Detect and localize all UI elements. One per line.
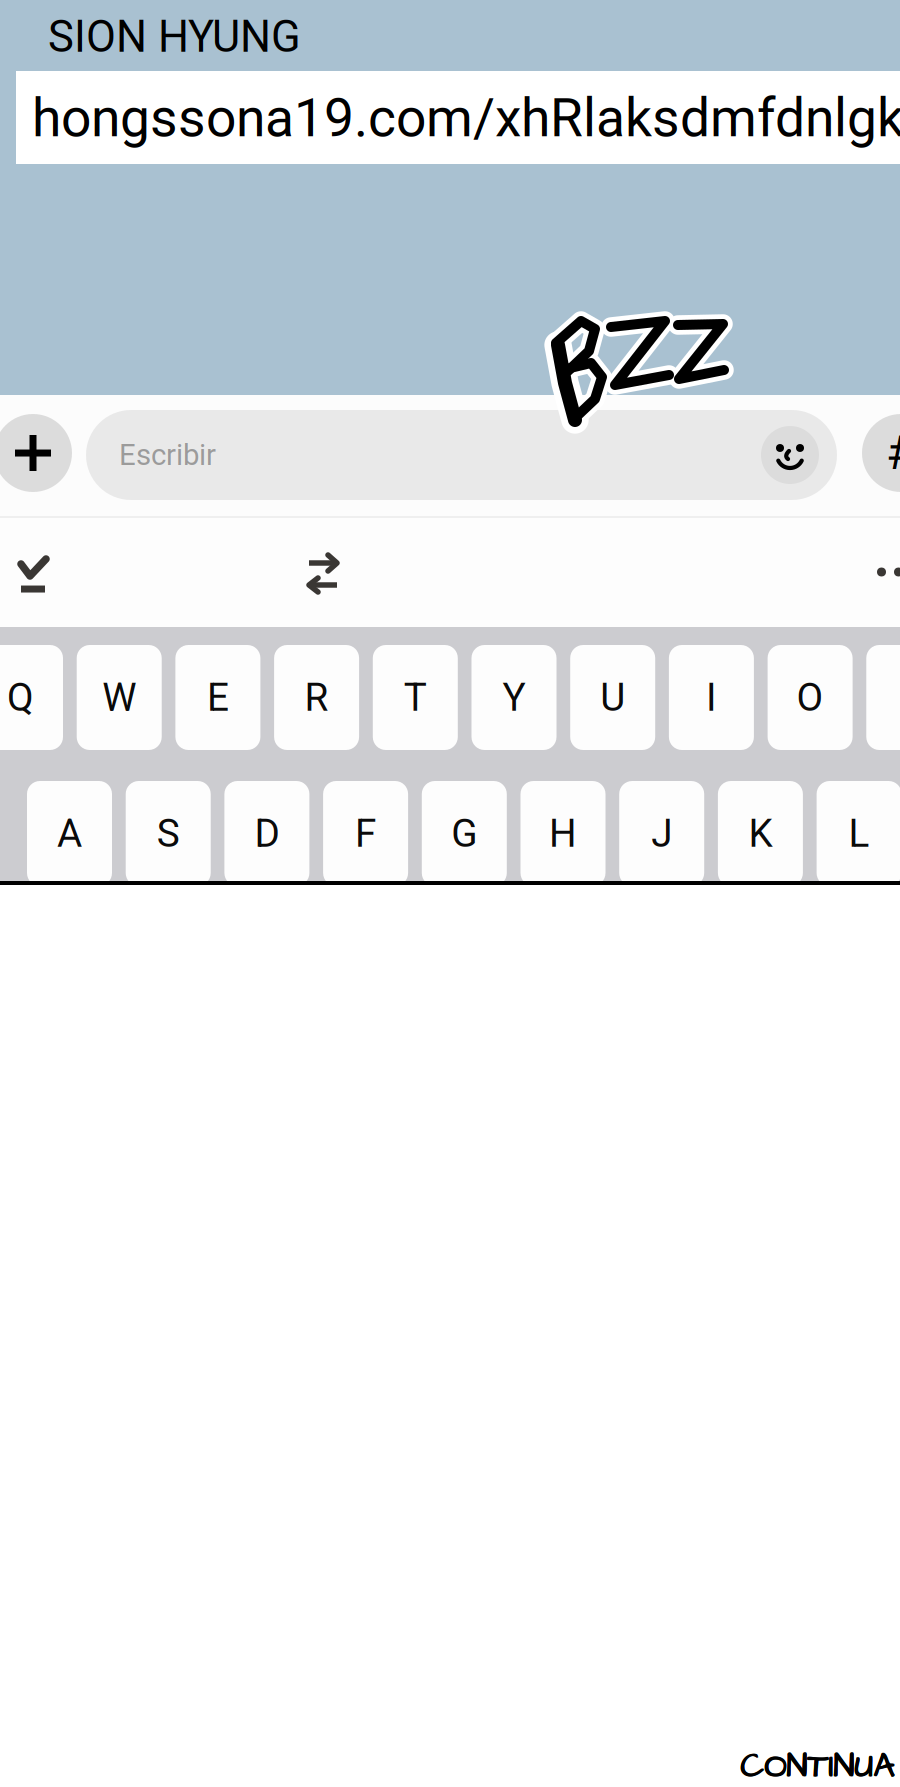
button[interactable]: J [619, 781, 704, 886]
button[interactable]: Hashtag [862, 414, 900, 492]
staticText: L [849, 811, 870, 856]
staticText: SION HYUNG [48, 11, 301, 62]
button[interactable]: A [27, 781, 112, 886]
button[interactable]: W [77, 645, 162, 750]
button[interactable]: K [718, 781, 803, 886]
staticText: J [651, 811, 672, 856]
staticText: G [451, 811, 477, 856]
staticText: Q [7, 675, 34, 720]
staticText: E [207, 675, 229, 720]
staticText: S [157, 811, 180, 856]
staticText: CONTINUA [740, 1744, 894, 1787]
staticText: CONTINUA [741, 1744, 895, 1787]
button[interactable]: Y [471, 645, 556, 750]
staticText: F [355, 811, 376, 856]
staticText: hongssona19.com/xhRlaksdmfdnlgks [32, 87, 900, 149]
staticText: W [102, 675, 136, 720]
staticText: CONTINUA [740, 1743, 894, 1787]
button[interactable]: O [768, 645, 853, 750]
button[interactable]: More [877, 552, 900, 592]
button[interactable]: F [323, 781, 408, 886]
button[interactable]: D [224, 781, 309, 886]
staticText: Escribir [119, 438, 216, 472]
button[interactable]: Hide keyboard [17, 556, 50, 594]
button[interactable]: T [373, 645, 458, 750]
staticText: I [706, 675, 717, 720]
staticText: K [748, 811, 772, 856]
staticText: Y [502, 675, 525, 720]
button[interactable]: Swap [307, 557, 339, 595]
button[interactable]: S [126, 781, 211, 886]
button[interactable]: H [520, 781, 605, 886]
staticText: O [797, 675, 824, 720]
staticText: # [886, 425, 900, 481]
staticText: U [600, 675, 625, 720]
button[interactable]: R [274, 645, 359, 750]
button[interactable]: U [570, 645, 655, 750]
staticText: H [549, 811, 577, 856]
staticText: T [404, 675, 427, 720]
button[interactable]: Add attachment [0, 414, 72, 492]
button[interactable]: E [175, 645, 260, 750]
staticText: A [57, 811, 82, 856]
button[interactable]: Q [0, 645, 63, 750]
button[interactable]: P [866, 645, 900, 750]
button[interactable]: Escribir [86, 410, 837, 500]
button[interactable]: G [422, 781, 507, 886]
staticText: R [305, 675, 329, 720]
button[interactable]: I [669, 645, 754, 750]
staticText: D [254, 811, 279, 856]
button[interactable]: L [817, 781, 900, 886]
staticText: CONTINUA [741, 1743, 895, 1787]
button[interactable]: Emoji [761, 426, 819, 484]
